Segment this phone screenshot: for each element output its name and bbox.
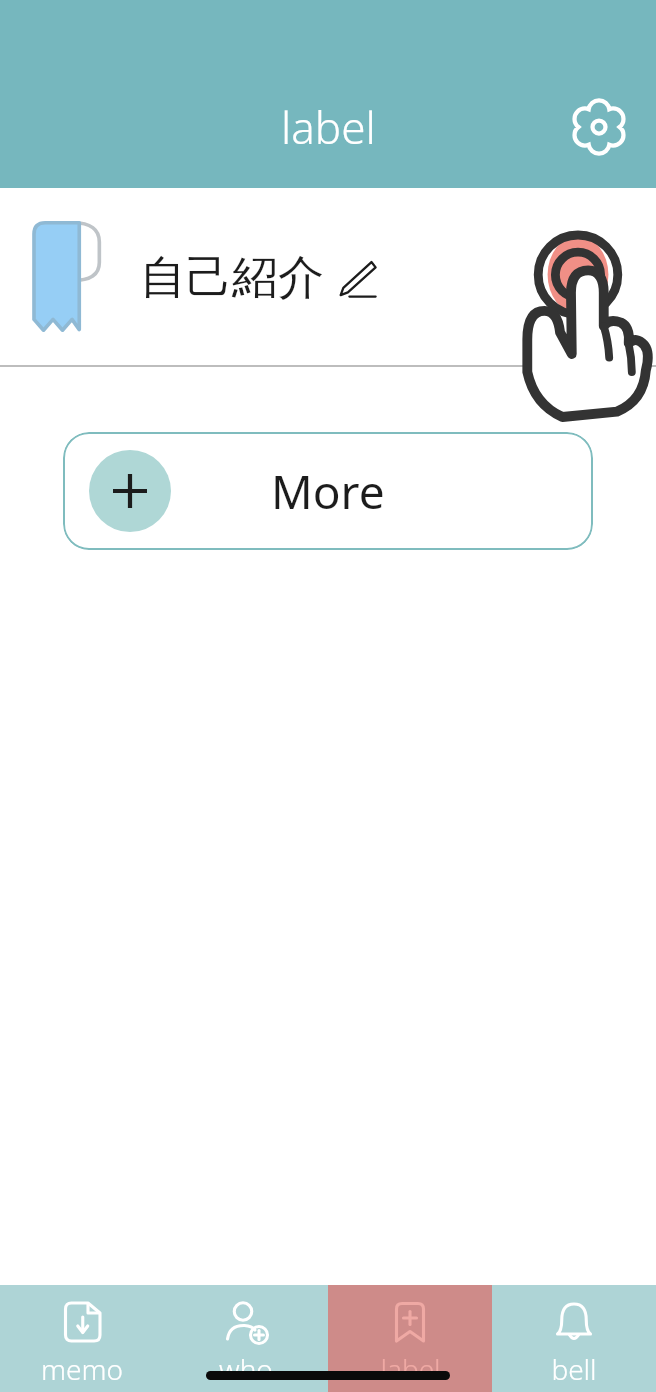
- button[interactable]: More: [63, 432, 593, 550]
- button[interactable]: bell: [492, 1285, 656, 1392]
- staticText: memo: [41, 1350, 123, 1388]
- staticText: 自己紹介: [140, 249, 324, 307]
- button[interactable]: label: [328, 1285, 492, 1392]
- staticText: who: [219, 1350, 273, 1388]
- other: Tap here: [500, 228, 656, 408]
- button[interactable]: who: [164, 1285, 328, 1392]
- button[interactable]: Settings: [564, 92, 634, 162]
- staticText: bell: [551, 1350, 597, 1388]
- staticText: More: [271, 460, 385, 523]
- staticText: label: [281, 97, 376, 157]
- staticText: label: [380, 1350, 441, 1388]
- button[interactable]: 自己紹介: [0, 188, 656, 367]
- button[interactable]: memo: [0, 1285, 164, 1392]
